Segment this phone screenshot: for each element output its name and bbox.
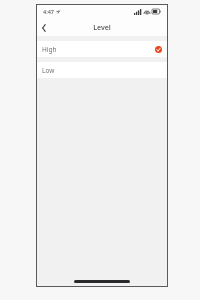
button[interactable]: Back	[36, 19, 52, 36]
staticText: Level	[93, 23, 111, 33]
staticText: 4:47	[43, 8, 54, 15]
staticText: Low	[42, 66, 55, 75]
button[interactable]: High	[36, 41, 168, 57]
staticText: High	[42, 45, 57, 54]
button[interactable]: Low	[36, 62, 168, 78]
